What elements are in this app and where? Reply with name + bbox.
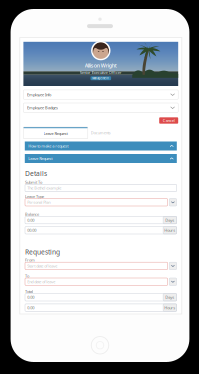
staticText: Days xyxy=(165,295,174,300)
staticText: Total xyxy=(25,289,33,294)
button[interactable]: How to make a request xyxy=(25,141,177,150)
staticText: Balance xyxy=(25,212,39,217)
staticText: Submit To xyxy=(25,179,42,185)
staticText: Allison Wright xyxy=(85,62,117,69)
staticText: Leave Request xyxy=(44,131,68,136)
staticText: Requesting xyxy=(25,248,60,256)
button[interactable]: Leave Request xyxy=(25,154,177,163)
staticText: From xyxy=(25,257,35,263)
staticText: Hours xyxy=(164,305,175,310)
staticText: Cancel xyxy=(163,118,175,123)
button[interactable]: Choose xyxy=(169,199,177,206)
staticText: To xyxy=(25,273,29,278)
staticText: How to make a request xyxy=(28,143,68,149)
button[interactable]: Documents xyxy=(88,127,114,139)
staticText: Hours xyxy=(164,228,175,233)
staticText: 0.00 xyxy=(27,295,34,300)
button[interactable]: Leave Request xyxy=(23,127,88,139)
staticText: 0.00 xyxy=(27,305,34,310)
button[interactable]: Cancel xyxy=(159,117,178,124)
staticText: Senior Executive Officer xyxy=(80,70,122,75)
button[interactable]: Employee Badges xyxy=(23,103,178,112)
staticText: 0.00 xyxy=(27,217,34,223)
staticText: Leave Request xyxy=(28,156,52,161)
staticText: Details xyxy=(25,169,47,178)
button[interactable]: Choose xyxy=(169,278,177,285)
staticText: Days xyxy=(165,217,174,223)
staticText: End date of leave xyxy=(27,279,55,284)
staticText: Leave Type xyxy=(25,194,44,199)
button[interactable]: Choose xyxy=(169,262,177,270)
staticText: The Bethel example xyxy=(27,185,61,191)
staticText: Employee Badges xyxy=(27,105,58,110)
staticText: 00.00 xyxy=(27,228,36,233)
staticText: Personal Plan xyxy=(27,200,50,205)
staticText: Management xyxy=(92,76,109,80)
button[interactable]: Employee Info xyxy=(23,90,178,99)
staticText: Start date of leave xyxy=(27,263,57,268)
staticText: Employee Info xyxy=(27,92,51,97)
staticText: Documents xyxy=(91,130,111,135)
